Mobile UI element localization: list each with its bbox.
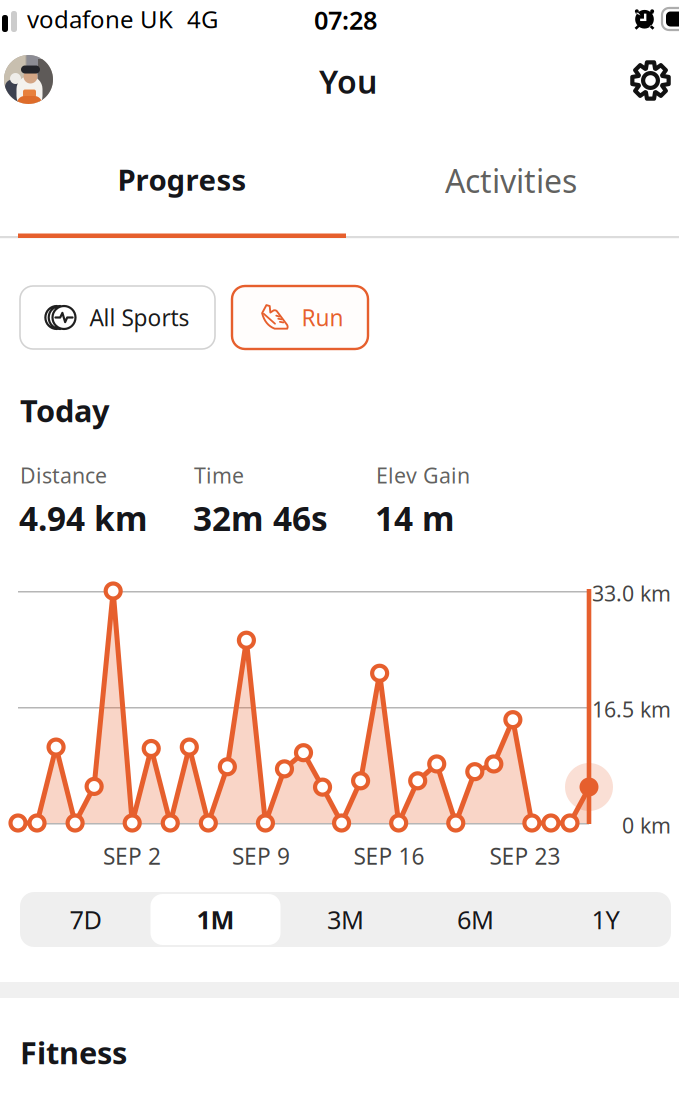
button[interactable]: 3M [280, 894, 410, 945]
staticText: 32m 46s [193, 496, 328, 540]
button[interactable]: Activities [346, 160, 676, 238]
staticText: Today [20, 390, 110, 431]
staticText: SEP 16 [353, 841, 424, 871]
button[interactable]: Settings [626, 56, 675, 105]
staticText: 0 km [622, 811, 671, 839]
staticText: Elev Gain [376, 461, 470, 489]
button[interactable]: 7D [20, 894, 150, 945]
staticText: 6M [457, 903, 494, 936]
staticText: Activities [445, 159, 577, 202]
staticText: 33.0 km [592, 579, 671, 607]
staticText: 07:28 [314, 3, 377, 37]
staticText: Fitness [20, 1032, 127, 1073]
button[interactable]: Profile [4, 55, 53, 104]
staticText: Progress [117, 160, 246, 199]
button[interactable]: 1Y [540, 894, 670, 945]
staticText: 14 m [375, 496, 455, 540]
staticText: vodafone UK [27, 3, 173, 35]
staticText: SEP 9 [232, 841, 290, 871]
staticText: You [319, 60, 377, 102]
staticText: Distance [20, 461, 107, 489]
staticText: 16.5 km [592, 695, 671, 723]
staticText: 7D [69, 903, 101, 936]
staticText: 1Y [591, 903, 619, 936]
button[interactable]: All Sports [20, 286, 215, 349]
staticText: 1M [196, 903, 234, 936]
staticText: SEP 23 [489, 841, 560, 871]
staticText: 3M [327, 903, 364, 936]
staticText: SEP 2 [103, 841, 161, 871]
button[interactable]: 1M [150, 894, 280, 945]
staticText: All Sports [89, 302, 189, 332]
staticText: 4G [187, 3, 218, 35]
button[interactable]: Progress [18, 160, 346, 238]
staticText: Run [301, 302, 343, 332]
staticText: Time [194, 461, 244, 489]
button[interactable]: Run [232, 286, 368, 349]
button[interactable]: 6M [410, 894, 540, 945]
staticText: 4.94 km [19, 496, 148, 540]
